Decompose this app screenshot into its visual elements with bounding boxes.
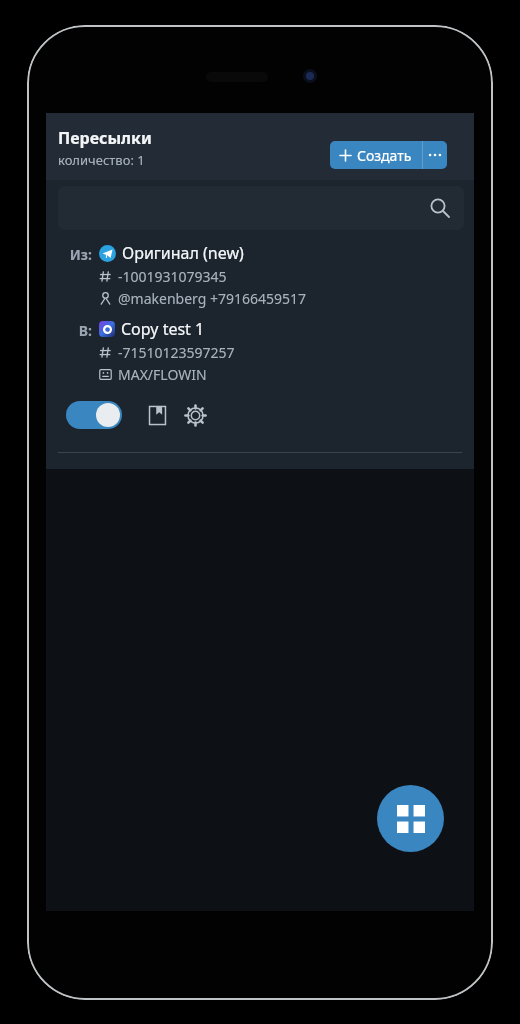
button[interactable]: Из: <box>46 242 474 432</box>
staticText: В: <box>58 321 92 340</box>
button[interactable]: Создать <box>330 141 422 169</box>
button[interactable]: Search <box>58 186 464 230</box>
staticText: Оригинал (new) <box>122 242 244 264</box>
staticText: количество: 1 <box>58 151 145 169</box>
staticText: Пересылки <box>58 127 152 149</box>
staticText: Copy test 1 <box>121 318 205 340</box>
button[interactable]: Settings <box>178 398 212 432</box>
staticText: MAX/FLOWIN <box>118 365 207 384</box>
staticText: -71510123597257 <box>118 343 235 362</box>
staticText: Из: <box>58 245 92 264</box>
button[interactable]: Notes <box>140 398 174 432</box>
staticText: Создать <box>357 146 412 165</box>
staticText: -1001931079345 <box>118 267 227 286</box>
button[interactable]: Enabled toggle <box>66 401 122 429</box>
button[interactable]: Apps grid <box>377 785 444 852</box>
button[interactable]: More options <box>423 141 447 169</box>
staticText: @makenberg +79166459517 <box>118 289 307 308</box>
